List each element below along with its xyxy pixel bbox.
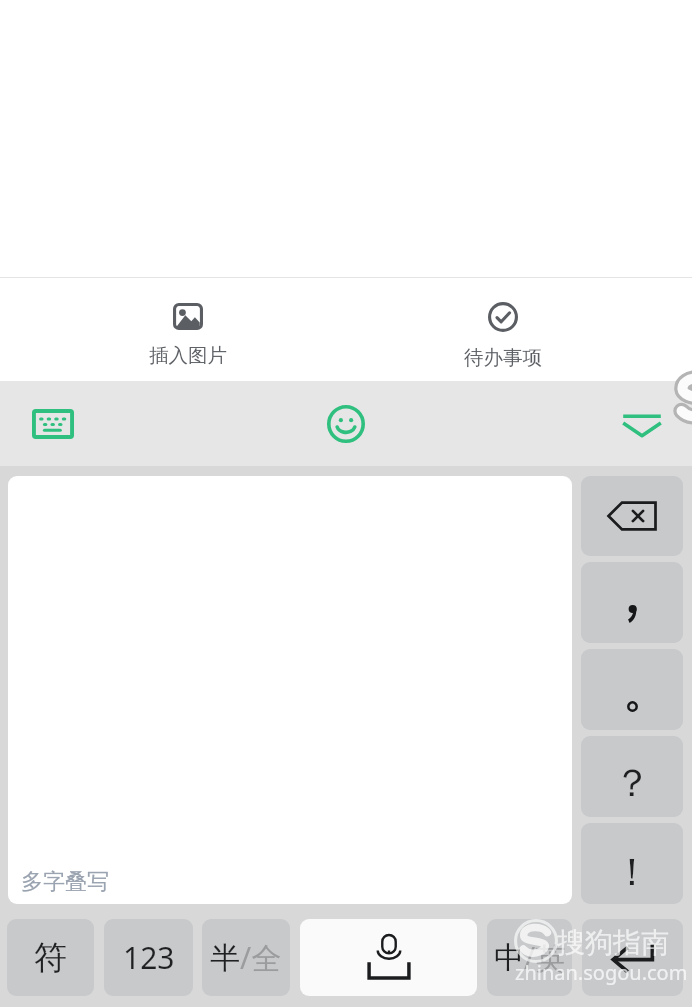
button[interactable]: ？ xyxy=(581,736,683,817)
staticText: 符 xyxy=(34,937,67,979)
button[interactable]: ！ xyxy=(581,823,683,904)
button[interactable]: Keyboard xyxy=(21,394,85,454)
staticText: 123 xyxy=(123,937,175,978)
button[interactable]: 插入图片 xyxy=(118,284,258,387)
button[interactable]: Enter xyxy=(582,919,683,996)
staticText: 插入图片 xyxy=(149,343,227,368)
button[interactable]: 符 xyxy=(7,919,94,996)
button[interactable]: Backspace xyxy=(581,476,683,556)
staticText: 多字叠写 xyxy=(21,868,109,896)
button[interactable]: 多字叠写 xyxy=(8,476,572,904)
button[interactable]: Comma xyxy=(581,562,683,643)
staticText: 中 xyxy=(494,939,524,977)
button[interactable]: Space, voice input xyxy=(300,919,477,996)
button[interactable]: Period xyxy=(581,649,683,730)
button[interactable]: 中 xyxy=(487,919,572,996)
button[interactable]: 半 xyxy=(202,919,290,996)
staticText: 半 xyxy=(210,939,240,977)
button[interactable]: 123 xyxy=(104,919,193,996)
staticText: /全 xyxy=(240,937,282,978)
staticText: 待办事项 xyxy=(464,345,542,370)
button[interactable]: 待办事项 xyxy=(433,284,573,387)
button[interactable]: Hide keyboard xyxy=(610,396,674,452)
staticText: ？ xyxy=(613,759,651,807)
staticText: /英 xyxy=(524,937,566,978)
button[interactable]: Emoji xyxy=(314,392,378,456)
staticText: 搜狗指南 xyxy=(557,925,669,960)
staticText: ！ xyxy=(613,848,651,896)
staticText: zhinan.sogou.com xyxy=(515,959,688,986)
